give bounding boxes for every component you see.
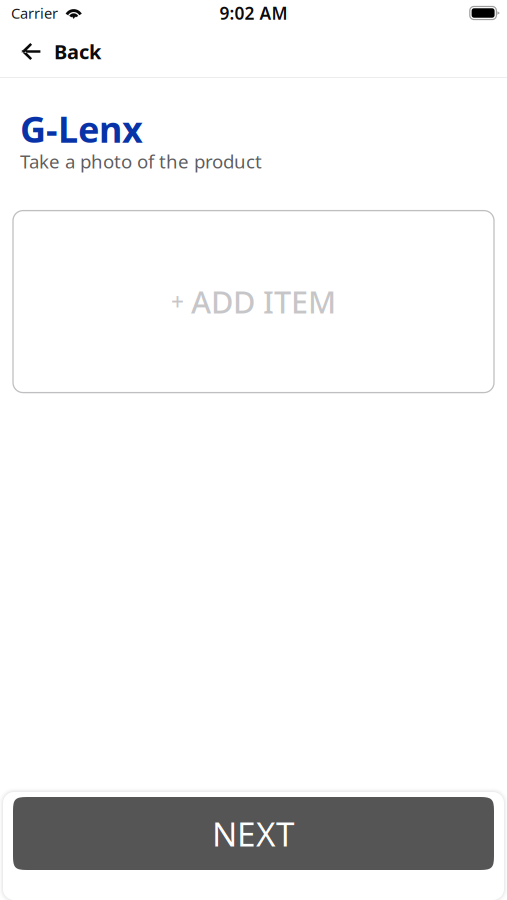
staticText: Back bbox=[54, 38, 101, 65]
button[interactable]: + bbox=[13, 211, 494, 393]
staticText: + bbox=[171, 286, 184, 317]
staticText: Carrier bbox=[11, 3, 58, 23]
staticText: Take a photo of the product bbox=[20, 149, 262, 174]
staticText: 9:02 AM bbox=[219, 1, 287, 24]
button[interactable]: NEXT bbox=[13, 797, 494, 870]
staticText: NEXT bbox=[212, 811, 295, 856]
staticText: G-Lenx bbox=[20, 105, 143, 153]
staticText: ADD ITEM bbox=[191, 281, 336, 322]
button[interactable]: Back bbox=[0, 26, 119, 77]
